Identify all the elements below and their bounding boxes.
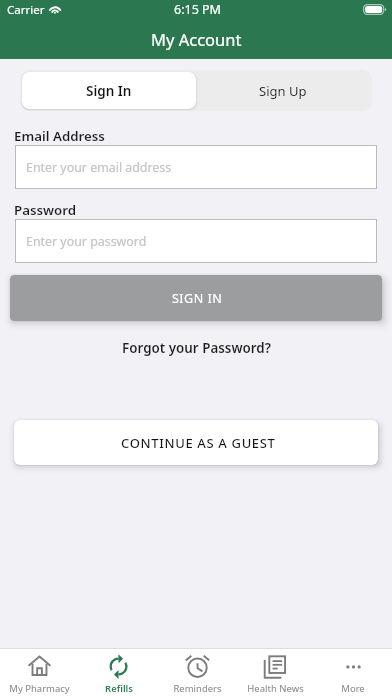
staticText: 6:15 PM [174,1,221,18]
staticText: Refills [105,682,133,695]
staticText: CONTINUE AS A GUEST [121,434,276,452]
button[interactable]: Sign Up [196,72,370,109]
staticText: Sign Up [259,82,307,100]
staticText: Reminders [173,682,222,695]
staticText: Health News [247,682,304,695]
staticText: SIGN IN [172,290,223,307]
button[interactable]: SIGN IN [10,275,382,321]
button[interactable]: More [314,649,392,696]
button[interactable]: Enter your email address [15,145,377,189]
staticText: Enter your password [26,233,147,250]
button[interactable]: Forgot your Password? [122,339,271,357]
staticText: Sign In [86,82,132,100]
button[interactable]: Health News [236,649,314,696]
staticText: Carrier [7,2,45,18]
staticText: Email Address [14,127,105,145]
button[interactable]: Reminders [158,649,236,696]
staticText: My Pharmacy [9,682,70,695]
staticText: Password [14,201,77,219]
staticText: My Account [151,28,242,50]
staticText: More [341,682,365,695]
button[interactable]: Sign In [22,72,196,109]
button[interactable]: Enter your password [15,219,377,263]
button[interactable]: My Pharmacy [0,649,79,696]
button[interactable]: CONTINUE AS A GUEST [14,420,378,465]
staticText: Enter your email address [26,159,172,176]
button[interactable]: Refills [79,649,158,696]
